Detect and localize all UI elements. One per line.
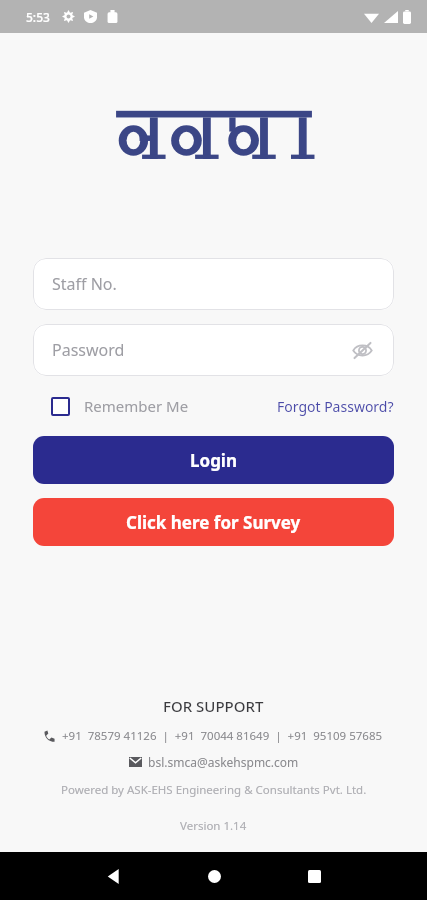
- button[interactable]: Back: [94, 856, 134, 896]
- button[interactable]: Recent apps: [294, 856, 334, 896]
- button[interactable]: Staff No.: [33, 258, 394, 310]
- button[interactable]: Click here for Survey: [33, 498, 394, 546]
- button[interactable]: Remember Me: [33, 396, 189, 416]
- staticText: Staff No.: [52, 273, 117, 295]
- staticText: Version 1.14: [180, 818, 247, 834]
- staticText: 5:53: [26, 9, 50, 25]
- button[interactable]: Password: [33, 324, 394, 376]
- staticText: Forgot Password?: [277, 397, 394, 416]
- button[interactable]: Forgot Password?: [277, 397, 394, 416]
- staticText: Login: [190, 449, 238, 472]
- staticText: +91 78579 41126 | +91 70044 81649 | +91 …: [62, 728, 383, 744]
- button[interactable]: Show password: [349, 337, 375, 363]
- staticText: Remember Me: [84, 396, 189, 416]
- staticText: Powered by ASK-EHS Engineering & Consult…: [61, 782, 367, 798]
- staticText: FOR SUPPORT: [163, 696, 264, 716]
- staticText: bsl.smca@askehspmc.com: [148, 754, 299, 770]
- staticText: Password: [52, 339, 125, 361]
- button[interactable]: Home: [194, 856, 234, 896]
- button[interactable]: Login: [33, 436, 394, 484]
- staticText: Click here for Survey: [126, 511, 301, 534]
